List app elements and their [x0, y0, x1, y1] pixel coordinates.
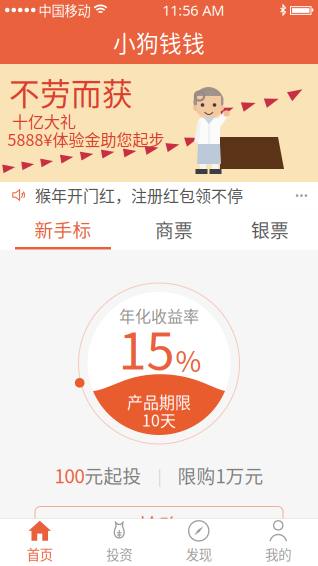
button[interactable]: 新手标 [0, 208, 126, 249]
staticText: 商票 [155, 215, 193, 242]
button[interactable]: 猴年开门红，注册红包领不停 [0, 182, 318, 208]
staticText: 10天 [142, 408, 176, 431]
button[interactable]: 投资 [79, 519, 159, 566]
staticText: 十亿大礼 [12, 109, 76, 133]
staticText: 中国移动 [38, 0, 90, 20]
staticText: 年化收益率 [119, 304, 199, 327]
button[interactable]: 发现 [159, 519, 238, 566]
button[interactable]: 商票 [126, 208, 222, 249]
staticText: 小狗钱钱 [113, 26, 205, 58]
staticText: 11:56 AM [162, 0, 224, 20]
staticText: 猴年开门红，注册红包领不停 [35, 183, 243, 207]
staticText: % [175, 340, 201, 380]
button[interactable]: 首页 [0, 519, 79, 566]
staticText: 元起投 [84, 461, 141, 488]
staticText: 银票 [251, 215, 289, 242]
button[interactable]: 我的 [238, 519, 318, 566]
staticText: 限购1万元 [177, 461, 263, 488]
staticText: 5888¥体验金助您起步 [7, 127, 164, 151]
staticText: 我的 [265, 544, 291, 564]
staticText: 100 [54, 461, 84, 488]
staticText: | [141, 463, 177, 487]
staticText: 新手标 [34, 215, 91, 242]
staticText: 投资 [106, 544, 132, 564]
staticText: 抢购 [138, 510, 180, 541]
staticText: 不劳而获 [9, 70, 133, 114]
staticText: 产品期限 [127, 390, 191, 413]
staticText: 15 [118, 311, 174, 384]
button[interactable]: 抢购 [35, 506, 283, 544]
button[interactable]: 银票 [222, 208, 318, 249]
staticText: 首页 [27, 544, 53, 564]
staticText: 发现 [186, 544, 212, 564]
